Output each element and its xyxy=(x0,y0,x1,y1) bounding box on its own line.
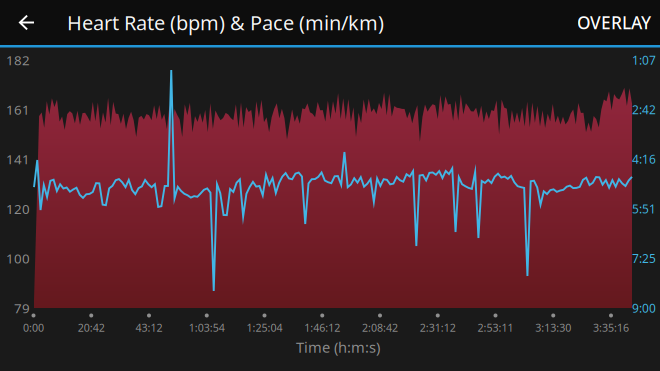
staticText: 141 xyxy=(6,150,30,168)
staticText: 2:31:12 xyxy=(420,320,456,335)
staticText: 3:35:16 xyxy=(593,320,629,335)
staticText: 182 xyxy=(6,51,30,69)
staticText: 79 xyxy=(14,299,30,317)
staticText: 1:03:54 xyxy=(189,320,225,335)
button[interactable]: OVERLAY xyxy=(577,11,660,34)
staticText: 9:00 xyxy=(632,300,656,316)
staticText: 2:42 xyxy=(632,102,656,117)
staticText: 100 xyxy=(6,249,30,267)
staticText: 2:08:42 xyxy=(362,320,398,335)
staticText: Time (h:m:s) xyxy=(296,337,380,357)
staticText: 20:42 xyxy=(78,320,105,335)
staticText: 5:51 xyxy=(632,201,656,217)
staticText: OVERLAY xyxy=(577,11,651,34)
staticText: 161 xyxy=(6,101,30,118)
button[interactable]: Back xyxy=(0,0,54,45)
staticText: 43:12 xyxy=(135,320,162,335)
staticText: 0:00 xyxy=(23,320,44,335)
staticText: 4:16 xyxy=(632,151,656,167)
staticText: 1:25:04 xyxy=(246,320,282,335)
staticText: 2:53:11 xyxy=(477,320,513,335)
staticText: 3:13:30 xyxy=(535,320,571,335)
staticText: Heart Rate (bpm) & Pace (min/km) xyxy=(67,9,384,36)
staticText: 1:07 xyxy=(632,52,656,68)
staticText: 1:46:12 xyxy=(304,320,340,335)
staticText: 120 xyxy=(6,200,30,218)
staticText: 7:25 xyxy=(632,250,656,266)
